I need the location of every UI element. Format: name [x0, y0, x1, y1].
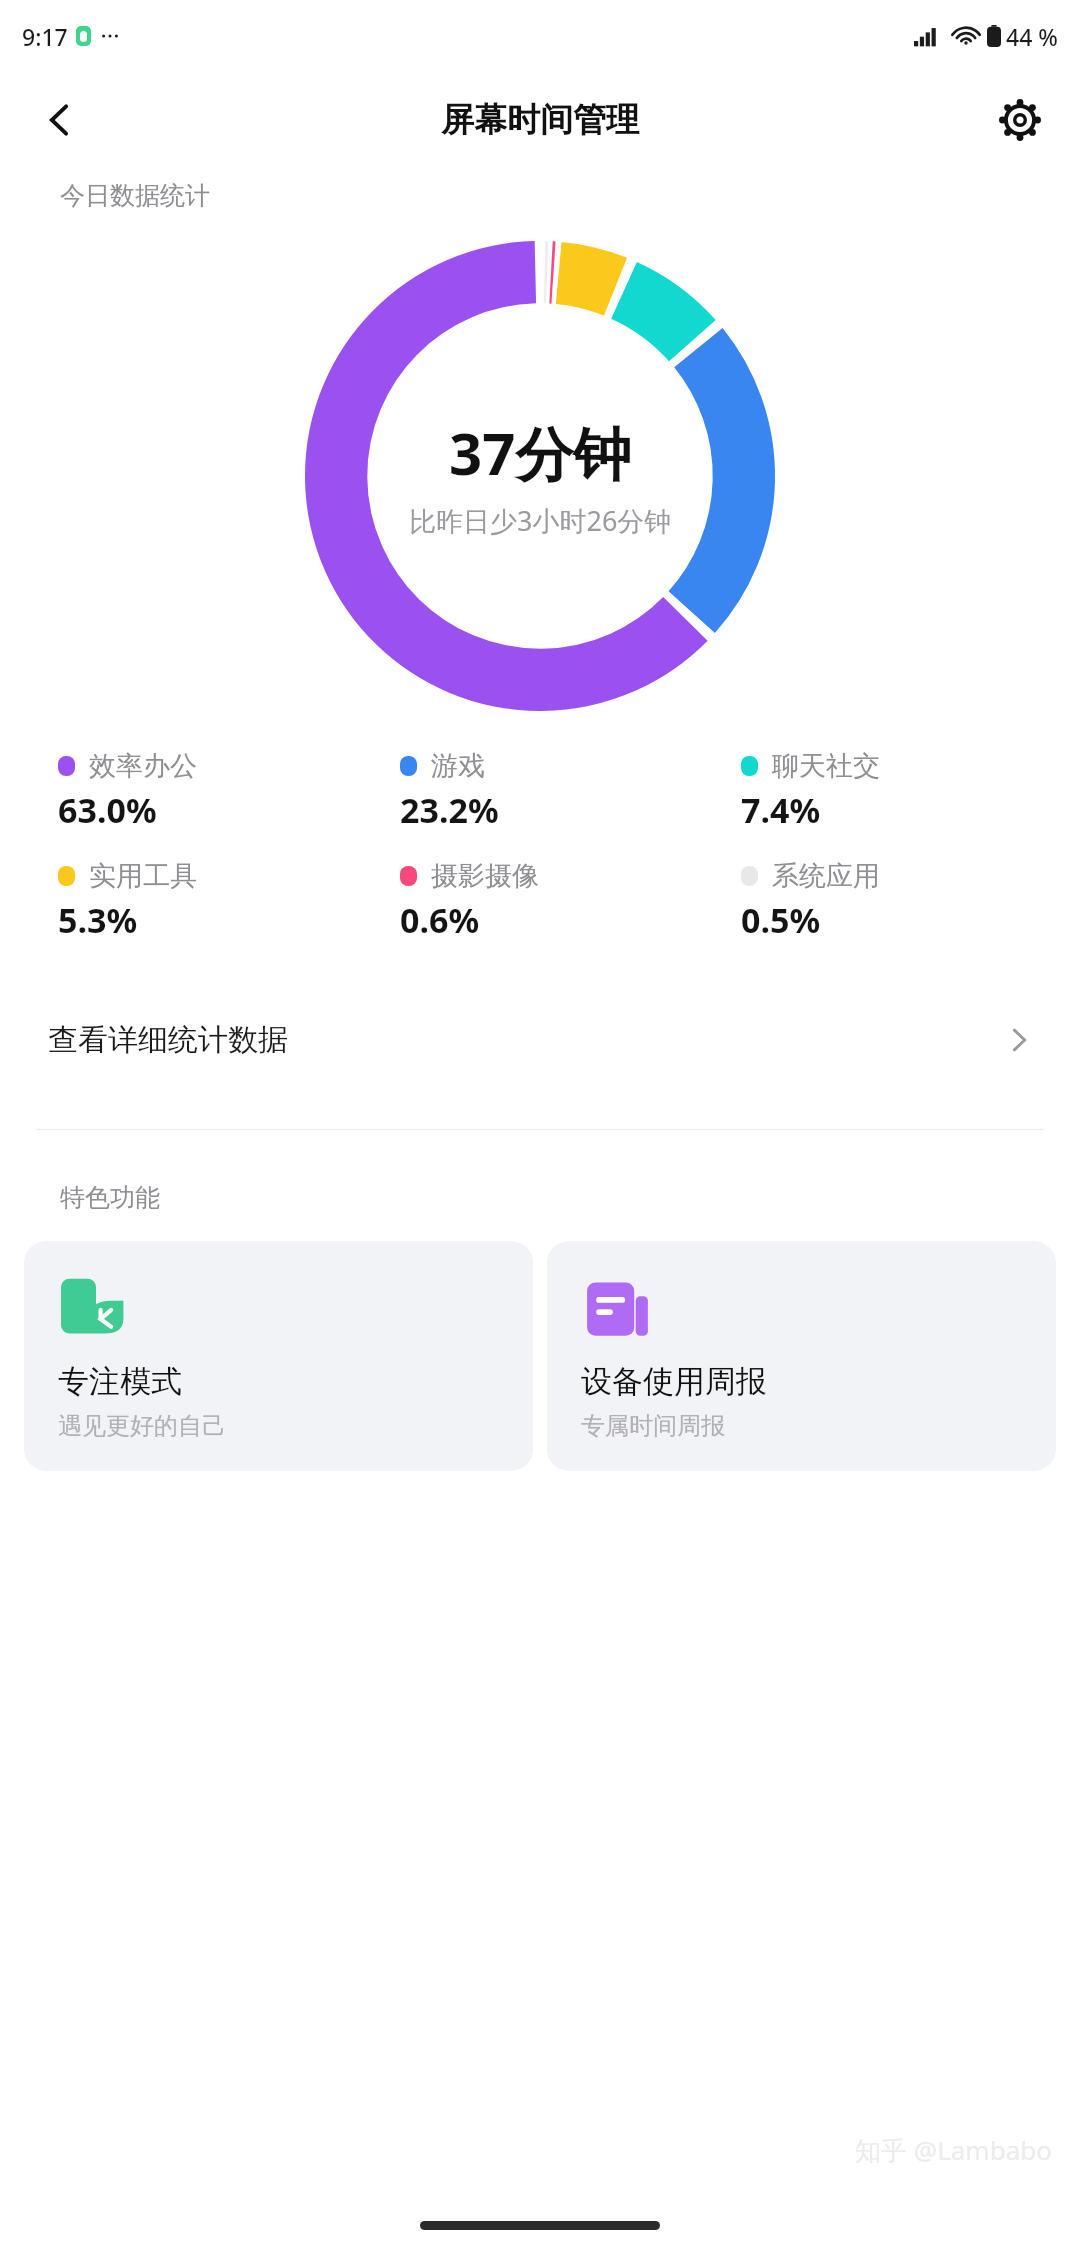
staticText: 系统应用 — [772, 859, 880, 893]
staticText: 设备使用周报 — [581, 1362, 767, 1401]
staticText: 今日数据统计 — [60, 180, 210, 211]
staticText: 0.6% — [400, 897, 480, 943]
button[interactable]: 聊天社交 — [719, 749, 1060, 833]
staticText: 实用工具 — [89, 859, 197, 893]
staticText: 聊天社交 — [772, 749, 880, 783]
staticText: 遇见更好的自己 — [58, 1411, 226, 1441]
staticText: 知乎 @Lambabo — [855, 2132, 1052, 2168]
staticText: 9:17 — [22, 21, 68, 52]
button[interactable]: 查看详细统计数据 — [0, 997, 1080, 1083]
staticText: 7.4% — [741, 787, 821, 833]
staticText: 37分钟 — [449, 413, 632, 492]
button[interactable]: 系统应用 — [719, 859, 1060, 943]
staticText: 摄影摄像 — [431, 859, 539, 893]
button[interactable]: 游戏 — [378, 749, 719, 833]
button[interactable]: 实用工具 — [36, 859, 378, 943]
staticText: 专属时间周报 — [581, 1411, 725, 1441]
button[interactable]: 专注模式 — [24, 1241, 533, 1471]
staticText: 比昨日少3小时26分钟 — [409, 502, 672, 539]
staticText: 效率办公 — [89, 749, 197, 783]
button[interactable]: Settings — [984, 84, 1056, 156]
staticText: 44 % — [1006, 21, 1058, 52]
button[interactable]: Back — [24, 84, 96, 156]
button[interactable]: 设备使用周报 — [547, 1241, 1056, 1471]
staticText: 屏幕时间管理 — [441, 99, 639, 141]
staticText: 63.0% — [58, 787, 157, 833]
button[interactable]: 摄影摄像 — [378, 859, 719, 943]
staticText: 5.3% — [58, 897, 138, 943]
staticText: 查看详细统计数据 — [48, 1021, 288, 1059]
button[interactable]: 效率办公 — [36, 749, 378, 833]
staticText: 特色功能 — [60, 1182, 160, 1213]
staticText: 23.2% — [400, 787, 499, 833]
staticText: 专注模式 — [58, 1362, 182, 1401]
staticText: 0.5% — [741, 897, 821, 943]
staticText: 游戏 — [431, 749, 485, 783]
other: More — [1006, 1027, 1032, 1053]
